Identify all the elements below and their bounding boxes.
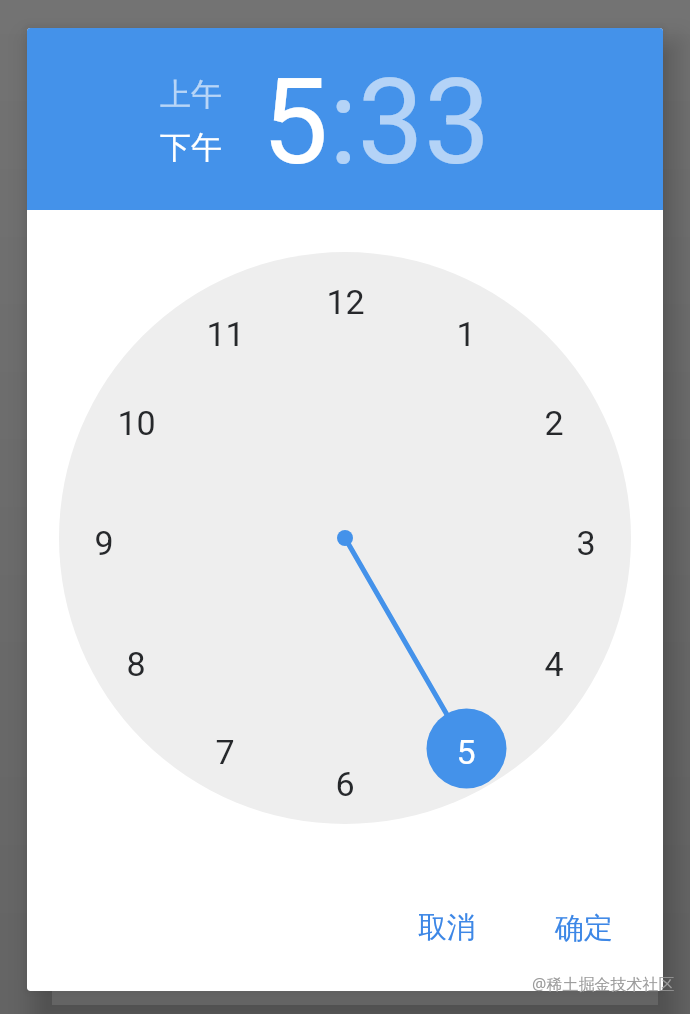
button[interactable]: 9 <box>74 520 134 566</box>
staticText: 7 <box>215 732 235 772</box>
staticText: 下午 <box>160 128 222 167</box>
staticText: 9 <box>94 523 114 563</box>
button[interactable]: 下午 <box>136 124 246 170</box>
button[interactable]: 12 <box>315 279 375 325</box>
staticText: 5 <box>262 54 329 192</box>
button[interactable]: 6 <box>315 761 375 807</box>
staticText: 3 <box>576 523 596 563</box>
button[interactable]: 2 <box>524 400 584 446</box>
staticText: 11 <box>206 314 245 354</box>
button[interactable]: 4 <box>524 641 584 687</box>
button[interactable]: 1 <box>436 311 496 357</box>
staticText: 上午 <box>160 75 222 114</box>
staticText: 确定 <box>555 910 613 947</box>
staticText: 1 <box>456 314 476 354</box>
staticText: @稀土掘金技术社区 <box>532 973 675 995</box>
button[interactable]: 11 <box>195 311 255 357</box>
button[interactable]: 取消 <box>387 897 507 957</box>
staticText: 5 <box>456 732 476 772</box>
staticText: 2 <box>544 403 564 443</box>
staticText: 6 <box>335 764 355 804</box>
staticText: 10 <box>117 403 156 443</box>
staticText: 取消 <box>418 909 476 946</box>
button[interactable]: 上午 <box>136 71 246 117</box>
button[interactable]: 5 <box>436 729 496 775</box>
staticText: 12 <box>326 282 365 322</box>
staticText: 8 <box>126 644 146 684</box>
button[interactable]: 确定 <box>524 898 644 958</box>
staticText: 4 <box>544 644 564 684</box>
staticText: :33 <box>329 54 491 192</box>
button[interactable]: 8 <box>106 641 166 687</box>
button[interactable]: 10 <box>106 400 166 446</box>
button[interactable]: 3 <box>556 520 616 566</box>
button[interactable]: 7 <box>195 729 255 775</box>
